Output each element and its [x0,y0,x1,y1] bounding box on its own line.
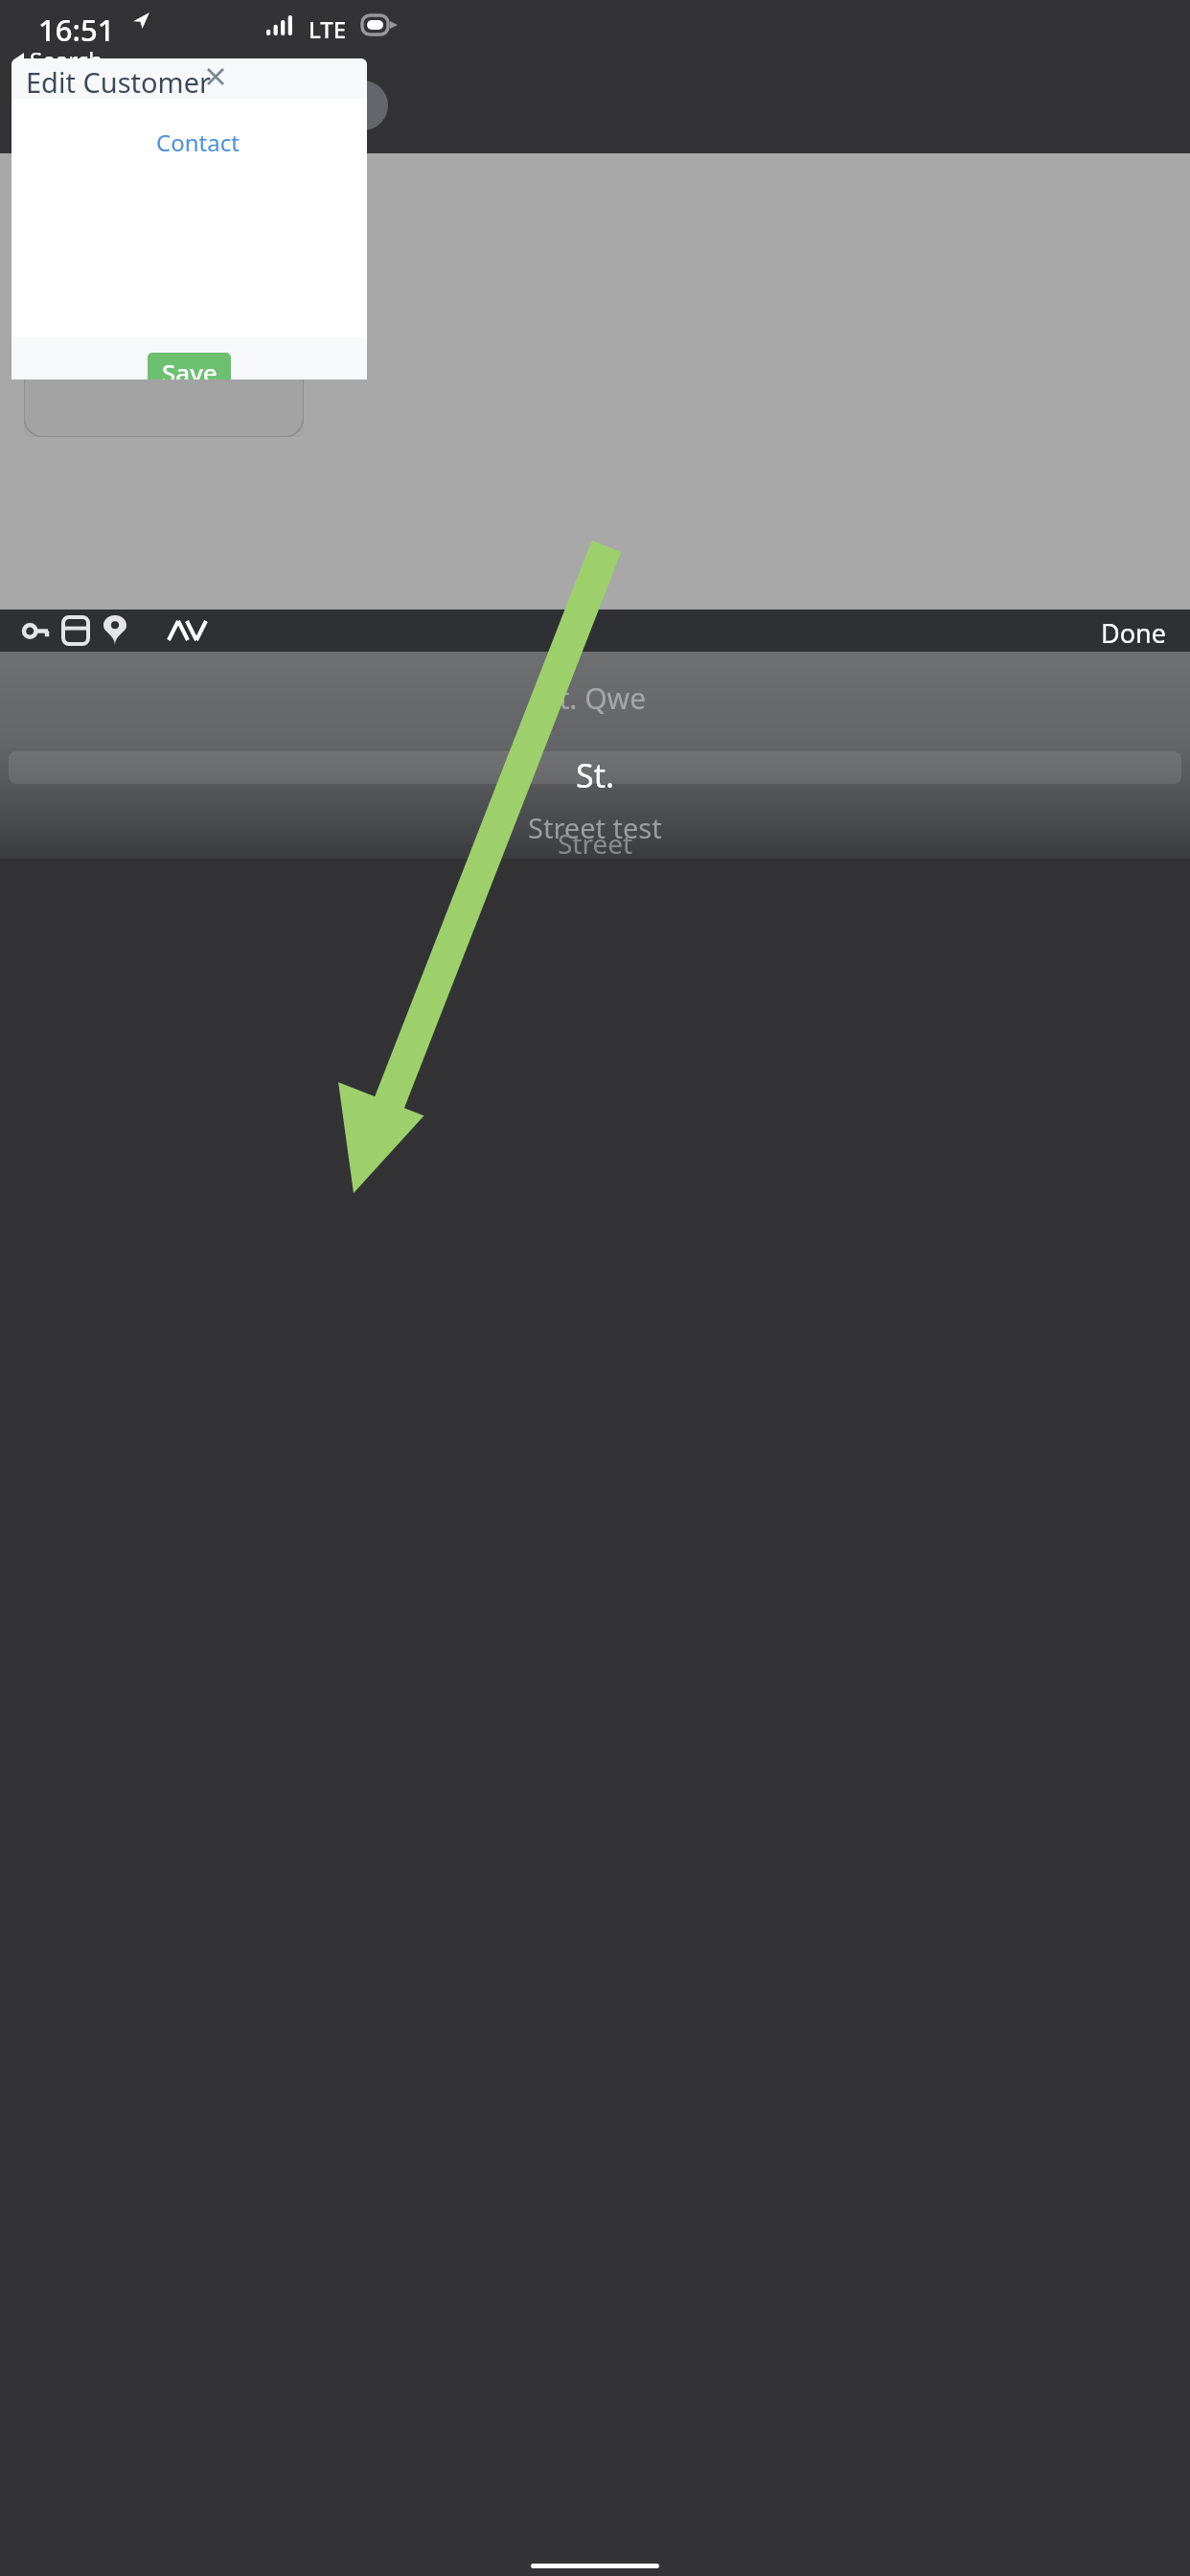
staticText: Save [162,356,217,379]
button[interactable]: Close [199,60,232,93]
button[interactable]: Previous field [161,613,195,648]
button[interactable]: Next field [179,613,214,648]
staticText: Edit Customer [26,63,212,101]
button[interactable]: Street [558,825,633,862]
staticText: 16:51 [38,10,115,50]
button[interactable]: Save [148,353,231,379]
button[interactable]: Done [1101,615,1166,646]
button[interactable]: Contact [34,126,361,167]
button[interactable]: Address and search [15,80,388,130]
button[interactable]: Address [103,615,126,646]
button[interactable]: Share [335,90,366,121]
button[interactable]: Passwords [23,618,48,643]
button[interactable]: Credit cards [62,616,89,645]
button[interactable]: Street test [528,809,662,846]
button[interactable]: Search [13,44,103,76]
staticText: Contact [156,126,240,158]
staticText: Search [30,44,103,76]
staticText: LTE [309,13,347,45]
staticText: St. Qwe [543,678,647,718]
button[interactable]: St. [576,753,615,797]
